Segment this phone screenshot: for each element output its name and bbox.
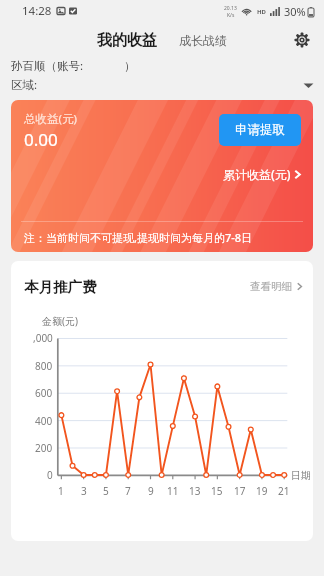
staticText: 30% [284, 4, 306, 19]
staticText: 注：当前时间不可提现,提现时间为每月的7-8日 [24, 230, 253, 245]
staticText: 日期 [291, 469, 311, 482]
staticText: 800 [35, 359, 53, 373]
staticText: ,000 [33, 331, 53, 345]
staticText: 0 [47, 468, 53, 482]
button[interactable]: 申请提取 [219, 114, 301, 146]
staticText: 孙百顺（账号: [11, 58, 84, 74]
staticText: 1 [58, 484, 64, 498]
staticText: 我的收益 [97, 31, 157, 50]
staticText: K/s [227, 12, 235, 19]
staticText: 总收益(元) [24, 111, 77, 127]
staticText: 400 [35, 414, 53, 428]
staticText: 19 [256, 484, 268, 498]
staticText: 13 [189, 484, 201, 498]
button[interactable]: 成长战绩 [175, 30, 231, 51]
button[interactable]: 总收益(元) [11, 100, 313, 252]
staticText: 200 [35, 441, 53, 455]
button[interactable]: Settings [288, 26, 316, 54]
staticText: 20.13 [224, 5, 237, 12]
staticText: 17 [234, 484, 246, 498]
staticText: 累计收益(元) [223, 166, 291, 182]
staticText: HD [257, 8, 266, 16]
staticText: 11 [167, 484, 179, 498]
staticText: 7 [125, 484, 131, 498]
staticText: 查看明细 [250, 280, 292, 293]
staticText: ） [124, 59, 136, 73]
button[interactable]: 区域: [11, 77, 314, 93]
staticText: 14:28 [22, 3, 52, 19]
staticText: 21 [278, 484, 290, 498]
staticText: 申请提取 [235, 122, 285, 138]
staticText: 成长战绩 [179, 33, 227, 48]
staticText: 金额(元) [42, 314, 78, 328]
button[interactable]: 累计收益(元) [217, 164, 313, 184]
button[interactable]: 查看明细 [244, 276, 313, 297]
staticText: 本月推广费 [24, 278, 97, 296]
button[interactable]: 我的收益 [93, 28, 161, 53]
staticText: 0.00 [24, 128, 58, 151]
staticText: 600 [35, 386, 53, 400]
staticText: 5 [103, 484, 109, 498]
staticText: 3 [81, 484, 87, 498]
staticText: 15 [211, 484, 223, 498]
staticText: 9 [148, 484, 154, 498]
staticText: 区域: [11, 77, 38, 93]
